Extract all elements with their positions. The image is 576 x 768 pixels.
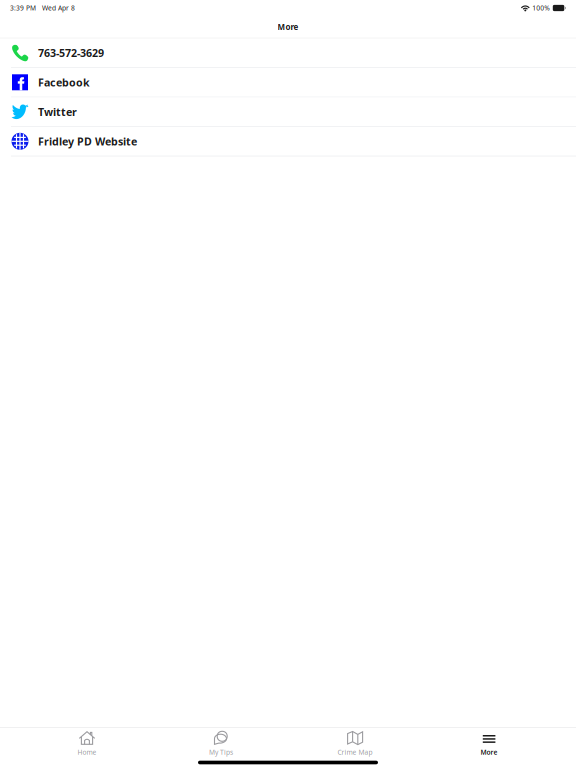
staticText: Home: [77, 748, 96, 757]
button[interactable]: Facebook: [0, 68, 576, 97]
staticText: 100%: [532, 4, 550, 12]
staticText: More: [480, 748, 497, 757]
staticText: Crime Map: [337, 748, 372, 757]
staticText: 763-572-3629: [38, 46, 104, 60]
staticText: Facebook: [38, 75, 90, 89]
button[interactable]: Home: [20, 728, 154, 757]
staticText: Twitter: [38, 105, 77, 119]
staticText: More: [277, 22, 298, 32]
button[interactable]: More: [422, 728, 556, 757]
staticText: My Tips: [209, 748, 233, 757]
button[interactable]: Twitter: [0, 97, 576, 127]
staticText: Fridley PD Website: [38, 134, 137, 148]
button[interactable]: My Tips: [154, 728, 288, 757]
staticText: Wed Apr 8: [42, 4, 75, 12]
button[interactable]: Crime Map: [288, 728, 422, 757]
button[interactable]: Fridley PD Website: [0, 127, 576, 156]
staticText: 3:39 PM: [10, 4, 36, 12]
button[interactable]: 763-572-3629: [0, 38, 576, 68]
